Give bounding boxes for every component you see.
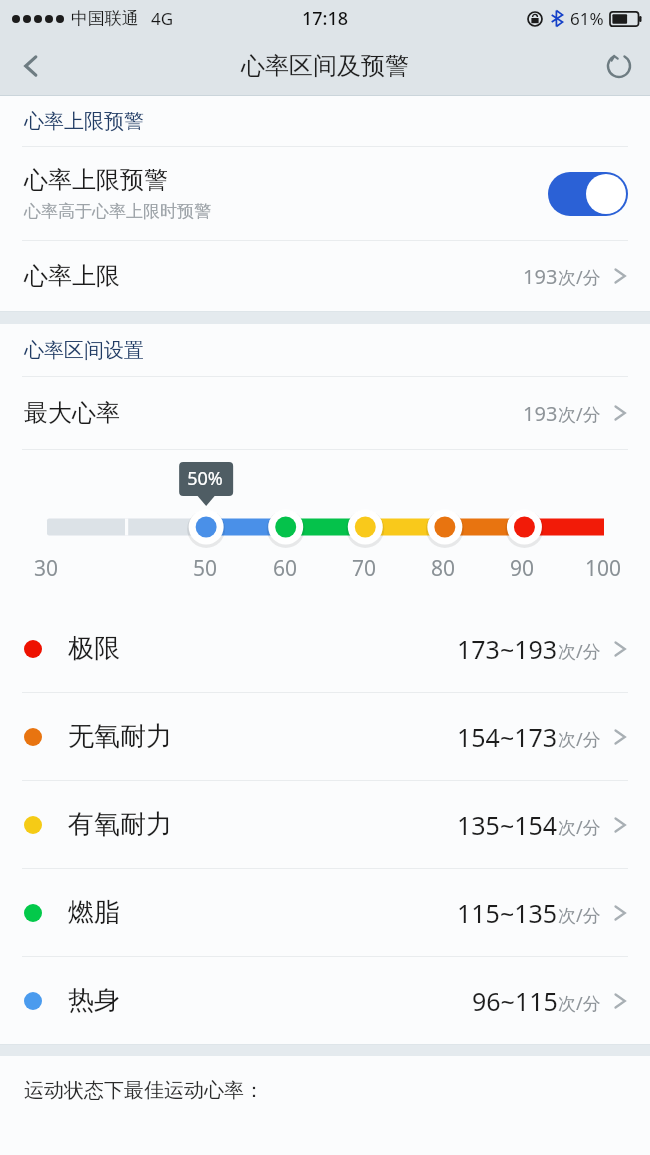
staticText: 次/分: [558, 991, 601, 1016]
staticText: 50: [177, 554, 233, 583]
staticText: 173~193: [457, 632, 558, 666]
button[interactable]: Back: [0, 36, 62, 96]
button[interactable]: 极限: [0, 605, 650, 692]
staticText: 96~115: [472, 984, 558, 1018]
staticText: 心率区间设置: [24, 338, 144, 363]
staticText: 154~173: [457, 720, 558, 754]
staticText: 115~135: [457, 896, 558, 930]
button[interactable]: 心率上限预警: [0, 147, 650, 240]
button[interactable]: Refresh: [588, 36, 650, 96]
button[interactable]: 无氧耐力: [0, 693, 650, 780]
staticText: 90: [494, 554, 550, 583]
staticText: 30: [18, 554, 74, 583]
staticText: 燃脂: [68, 896, 457, 929]
staticText: 运动状态下最佳运动心率：: [24, 1078, 264, 1103]
button[interactable]: 最大心率: [0, 377, 650, 449]
staticText: 次/分: [558, 727, 601, 752]
button[interactable]: Heart rate upper limit alert toggle: [548, 172, 628, 216]
button[interactable]: 心率上限: [0, 241, 650, 311]
staticText: 60: [257, 554, 313, 583]
button[interactable]: 燃脂: [0, 869, 650, 956]
staticText: 4G: [151, 7, 174, 30]
button[interactable]: 有氧耐力: [0, 781, 650, 868]
staticText: 193: [523, 263, 558, 290]
staticText: 次/分: [558, 265, 601, 290]
staticText: 中国联通: [71, 8, 139, 29]
staticText: 心率上限: [24, 261, 523, 291]
staticText: 17:18: [302, 6, 349, 31]
staticText: 61%: [570, 7, 604, 30]
staticText: 次/分: [558, 402, 601, 427]
button[interactable]: 热身: [0, 957, 650, 1044]
staticText: 70: [336, 554, 392, 583]
staticText: 心率上限预警: [24, 165, 168, 195]
staticText: 无氧耐力: [68, 720, 457, 753]
staticText: 次/分: [558, 903, 601, 928]
staticText: 心率上限预警: [24, 109, 144, 134]
staticText: 极限: [68, 632, 457, 665]
staticText: 心率高于心率上限时预警: [24, 201, 211, 222]
staticText: 135~154: [457, 808, 558, 842]
staticText: 193: [523, 400, 558, 427]
staticText: 次/分: [558, 815, 601, 840]
staticText: 最大心率: [24, 398, 523, 428]
staticText: 次/分: [558, 639, 601, 664]
staticText: 50%: [178, 466, 232, 491]
staticText: 有氧耐力: [68, 808, 457, 841]
staticText: 80: [415, 554, 471, 583]
staticText: 热身: [68, 984, 472, 1017]
staticText: 100: [575, 554, 631, 583]
staticText: 心率区间及预警: [241, 51, 409, 81]
